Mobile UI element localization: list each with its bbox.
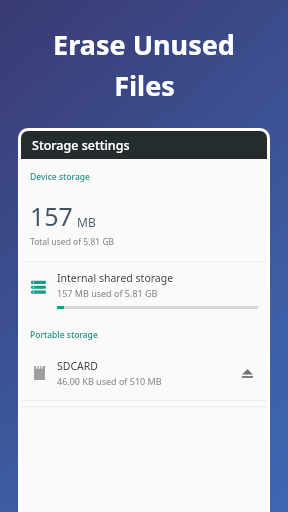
staticText: Device storage — [30, 171, 90, 183]
staticText: Storage settings — [32, 137, 130, 154]
staticText: Internal shared storage — [57, 271, 174, 285]
staticText: Files — [114, 67, 175, 104]
button[interactable]: Eject SD card — [236, 362, 258, 384]
staticText: SDCARD — [57, 359, 98, 373]
staticText: 46.00 KB used of 510 MB — [57, 375, 162, 387]
button[interactable]: Storage settings — [21, 131, 267, 159]
staticText: MB — [77, 214, 96, 230]
staticText: Erase Unused — [53, 26, 235, 63]
staticText: 157 MB used of 5.81 GB — [57, 287, 158, 299]
staticText: 157 — [30, 199, 73, 233]
button[interactable]: Internal shared storage — [21, 262, 267, 317]
staticText: Total used of 5.81 GB — [30, 236, 115, 248]
staticText: Portable storage — [30, 329, 98, 341]
button[interactable]: SDCARD — [21, 357, 267, 395]
